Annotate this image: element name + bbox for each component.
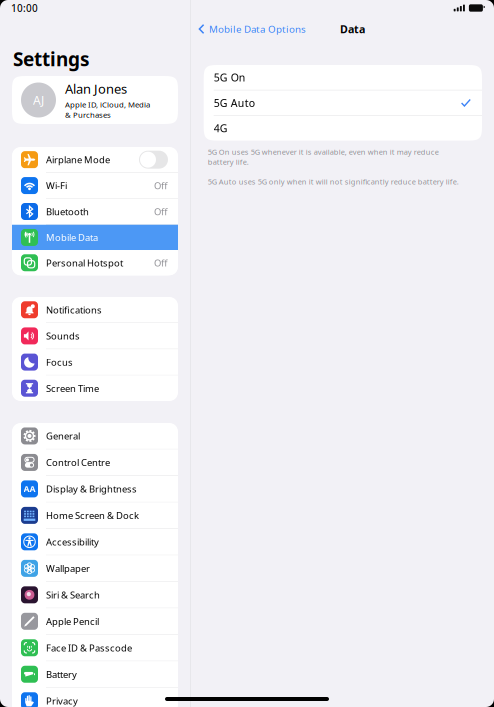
staticText: Off <box>154 179 167 192</box>
staticText: Apple ID, iCloud, Media <box>65 99 150 110</box>
button[interactable]: AA <box>12 476 178 502</box>
staticText: Battery <box>46 668 77 680</box>
staticText: 5G Auto <box>214 96 255 110</box>
staticText: battery life. <box>208 157 249 167</box>
button[interactable]: Home Screen & Dock <box>12 502 178 528</box>
button[interactable]: Wallpaper <box>12 555 178 581</box>
button[interactable]: Accessibility <box>12 529 178 555</box>
button[interactable]: Wi-Fi <box>12 173 178 198</box>
staticText: General <box>46 430 80 442</box>
button[interactable]: Screen Time <box>12 375 178 401</box>
staticText: Control Centre <box>46 456 110 469</box>
staticText: 4G <box>214 121 228 135</box>
staticText: 5G On uses 5G whenever it is available, … <box>208 147 439 157</box>
staticText: Off <box>154 205 167 218</box>
staticText: Mobile Data <box>46 231 98 244</box>
button[interactable]: Apple Pencil <box>12 608 178 634</box>
staticText: Mobile Data Options <box>209 22 306 35</box>
button[interactable]: Focus <box>12 349 178 375</box>
staticText: Focus <box>46 356 73 368</box>
staticText: Off <box>154 256 167 269</box>
button[interactable]: Mobile Data Options <box>191 22 306 35</box>
button[interactable]: Notifications <box>12 297 178 323</box>
staticText: 5G On <box>214 70 246 84</box>
staticText: Face ID & Passcode <box>46 641 132 654</box>
staticText: Wi-Fi <box>46 179 67 192</box>
button[interactable]: Control Centre <box>12 449 178 475</box>
staticText: Airplane Mode <box>46 153 110 166</box>
staticText: Apple Pencil <box>46 615 99 627</box>
button[interactable]: Siri & Search <box>12 582 178 608</box>
button[interactable]: 5G Auto <box>204 90 482 115</box>
button[interactable]: General <box>12 423 178 449</box>
button[interactable]: AJ <box>12 76 178 124</box>
staticText: 5G Auto uses 5G only when it will not si… <box>208 177 459 187</box>
staticText: Display & Brightness <box>46 483 137 495</box>
staticText: Alan Jones <box>65 80 127 97</box>
staticText: Data <box>340 22 365 36</box>
staticText: AA <box>23 483 35 495</box>
staticText: Bluetooth <box>46 205 89 218</box>
staticText: Wallpaper <box>46 562 90 575</box>
staticText: Personal Hotspot <box>46 256 123 269</box>
button[interactable]: Sounds <box>12 323 178 349</box>
button[interactable]: Mobile Data <box>12 225 178 250</box>
button[interactable]: Face ID & Passcode <box>12 635 178 661</box>
staticText: 10:00 <box>11 1 38 15</box>
button[interactable]: Bluetooth <box>12 199 178 224</box>
staticText: Settings <box>13 46 90 71</box>
staticText: Notifications <box>46 303 102 316</box>
button[interactable]: Privacy <box>12 688 178 707</box>
button[interactable]: Battery <box>12 661 178 687</box>
staticText: Home Screen & Dock <box>46 509 139 522</box>
staticText: Siri & Search <box>46 589 100 601</box>
staticText: Accessibility <box>46 536 99 548</box>
button[interactable]: 5G On <box>204 65 482 90</box>
button[interactable]: Personal Hotspot <box>12 250 178 275</box>
staticText: Privacy <box>46 694 78 707</box>
staticText: Sounds <box>46 330 80 342</box>
staticText: Screen Time <box>46 382 99 394</box>
staticText: AJ <box>33 92 44 108</box>
button[interactable]: Airplane Mode <box>12 147 178 172</box>
staticText: & Purchases <box>65 110 111 120</box>
button[interactable]: 4G <box>204 116 482 141</box>
